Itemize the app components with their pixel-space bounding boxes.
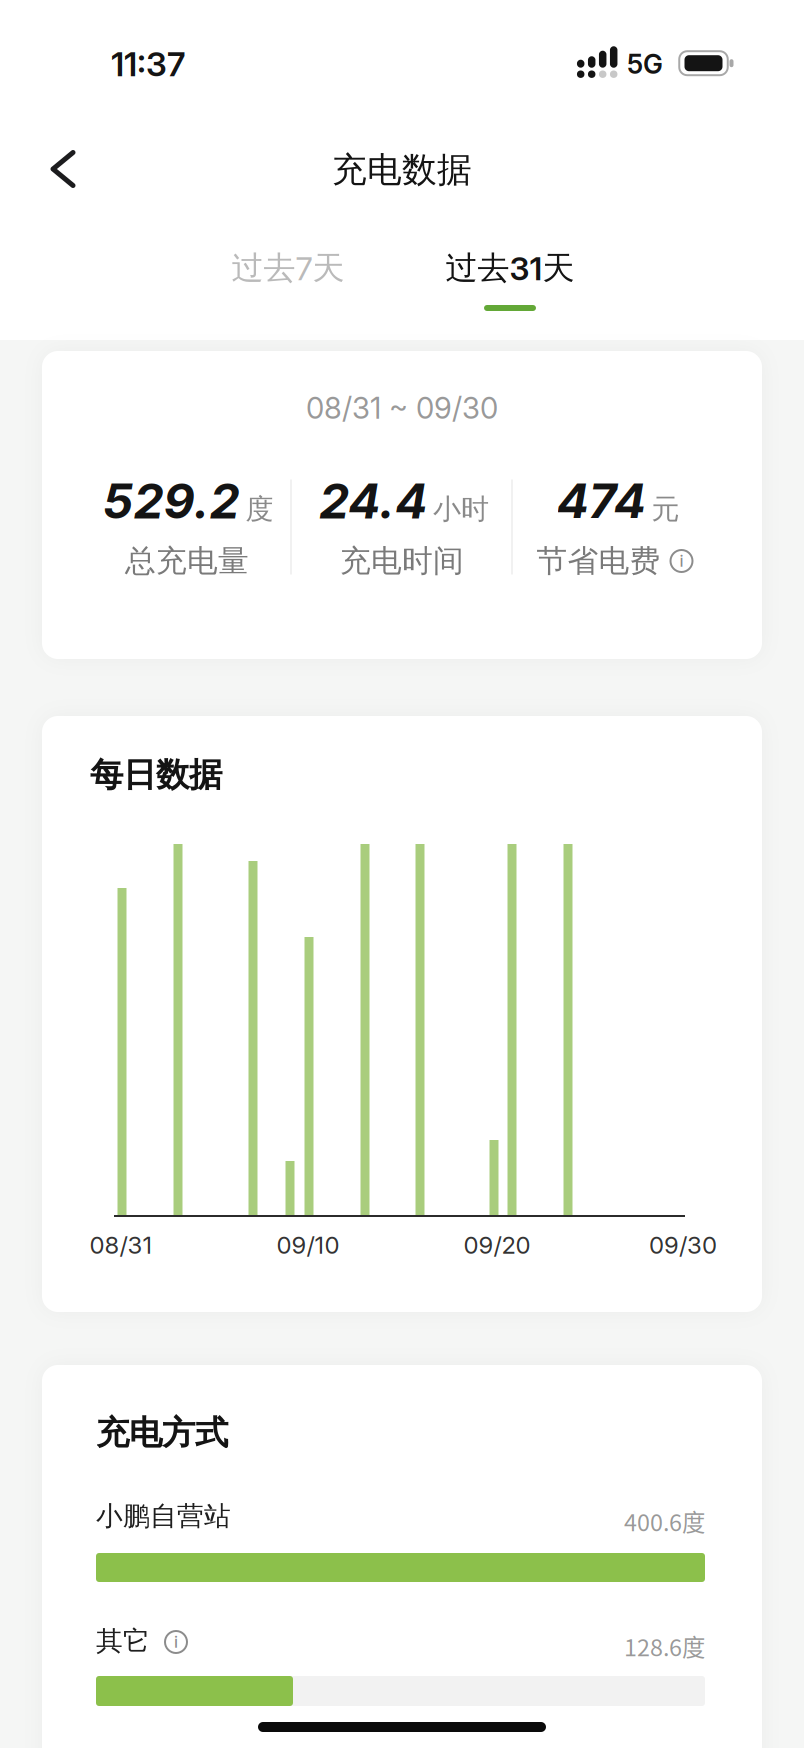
staticText: 节省电费: [536, 542, 660, 580]
staticText: 529.2: [102, 473, 239, 529]
staticText: 08/31 ~ 09/30: [306, 391, 498, 425]
staticText: 充电数据: [332, 149, 472, 191]
staticText: 5G: [627, 48, 663, 80]
staticText: 每日数据: [90, 754, 222, 795]
staticText: 过去31天: [445, 248, 574, 288]
staticText: 小时: [433, 492, 489, 526]
button[interactable]: Info: [164, 1630, 188, 1654]
staticText: 474: [556, 473, 645, 529]
staticText: 充电方式: [96, 1412, 228, 1453]
button[interactable]: Info: [669, 549, 693, 573]
staticText: 24.4: [319, 473, 427, 529]
staticText: 充电时间: [340, 542, 464, 580]
staticText: 400.6度: [624, 1504, 705, 1538]
button[interactable]: 过去7天: [198, 238, 378, 298]
staticText: 09/30: [649, 1231, 717, 1259]
staticText: 其它: [96, 1625, 150, 1657]
staticText: 09/20: [463, 1231, 530, 1259]
staticText: 小鹏自营站: [96, 1500, 231, 1532]
button[interactable]: 过去31天: [415, 238, 605, 298]
staticText: 度: [245, 492, 273, 526]
staticText: i: [174, 1633, 178, 1651]
staticText: 128.6度: [624, 1629, 705, 1663]
staticText: 元: [651, 492, 679, 526]
staticText: i: [679, 552, 683, 570]
staticText: 过去7天: [231, 248, 344, 288]
staticText: 总充电量: [125, 542, 249, 580]
staticText: 08/31: [89, 1231, 152, 1259]
staticText: 09/10: [276, 1231, 339, 1259]
staticText: 11:37: [111, 44, 185, 84]
button[interactable]: Back: [41, 147, 85, 191]
